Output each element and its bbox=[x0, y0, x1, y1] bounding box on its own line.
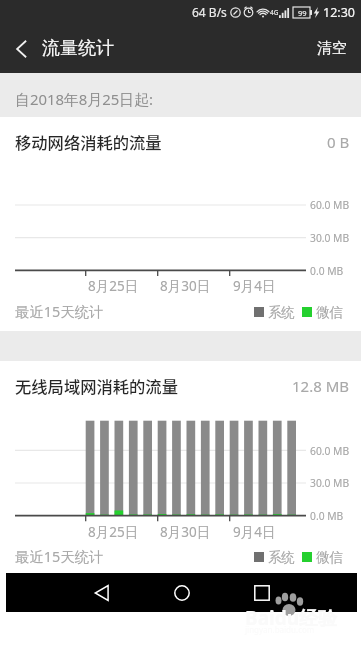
staticText: 系统 bbox=[268, 304, 295, 321]
staticText: 无线局域网消耗的流量 bbox=[15, 374, 178, 398]
button[interactable]: Recent apps bbox=[238, 573, 286, 612]
staticText: 64 B/s bbox=[192, 4, 227, 20]
staticText: 清空 bbox=[317, 39, 347, 58]
staticText: 微信 bbox=[316, 304, 343, 321]
staticText: 8月25日 bbox=[88, 523, 139, 541]
staticText: 9月4日 bbox=[233, 277, 276, 295]
staticText: 系统 bbox=[268, 549, 295, 566]
button[interactable]: 清空 bbox=[303, 24, 361, 73]
staticText: 流量统计 bbox=[42, 37, 114, 60]
staticText: 8月25日 bbox=[88, 277, 139, 295]
staticText: 12:30 bbox=[323, 4, 355, 21]
staticText: 30.0 MB bbox=[310, 476, 350, 490]
staticText: 30.0 MB bbox=[310, 231, 350, 245]
staticText: 60.0 MB bbox=[310, 444, 350, 458]
button[interactable]: Back bbox=[0, 24, 42, 73]
staticText: 4G bbox=[270, 8, 279, 17]
staticText: 自2018年8月25日起: bbox=[15, 89, 154, 109]
staticText: 0.0 MB bbox=[310, 509, 344, 523]
staticText: 8月30日 bbox=[160, 523, 211, 541]
staticText: 0 B bbox=[327, 132, 350, 152]
button[interactable]: Home bbox=[158, 573, 206, 612]
staticText: 移动网络消耗的流量 bbox=[15, 130, 162, 154]
button[interactable]: Back bbox=[78, 573, 126, 612]
staticText: 最近15天统计 bbox=[15, 302, 104, 322]
staticText: 12.8 MB bbox=[292, 376, 350, 396]
staticText: 微信 bbox=[316, 549, 343, 566]
staticText: Baidu经验 bbox=[245, 605, 338, 631]
staticText: 99 bbox=[298, 8, 307, 18]
staticText: 60.0 MB bbox=[310, 198, 350, 212]
staticText: 8月30日 bbox=[160, 277, 211, 295]
staticText: 0.0 MB bbox=[310, 264, 344, 278]
staticText: 最近15天统计 bbox=[15, 547, 104, 567]
staticText: 9月4日 bbox=[233, 523, 276, 541]
